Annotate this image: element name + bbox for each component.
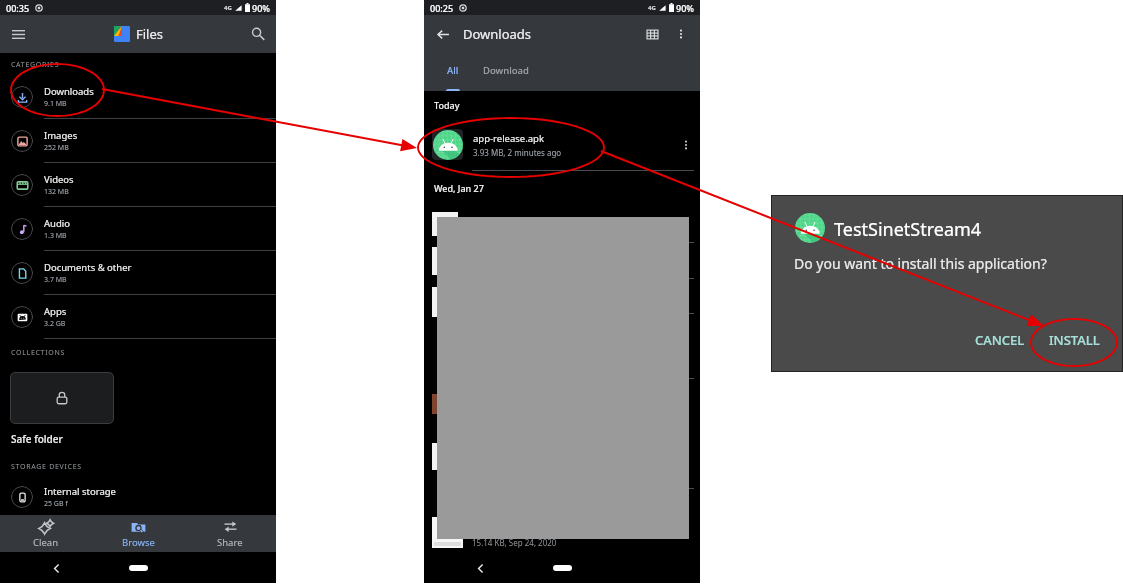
staticText: 25 GB f [44, 499, 68, 509]
button[interactable]: All [434, 53, 472, 91]
button[interactable]: Apps [0, 295, 276, 339]
staticText: TestSinetStream4 [834, 217, 982, 242]
staticText: 00:35 [6, 2, 30, 14]
staticText: Today [434, 99, 460, 111]
staticText: Clean [33, 536, 59, 549]
staticText: Videos [44, 173, 74, 186]
button[interactable]: Images [0, 119, 276, 163]
button[interactable]: Share [184, 515, 276, 552]
button[interactable]: Videos [0, 163, 276, 207]
staticText: STORAGE DEVICES [11, 462, 82, 472]
button[interactable]: INSTALL [1040, 327, 1109, 352]
staticText: Apps [44, 305, 67, 318]
staticText: Share [217, 536, 243, 549]
staticText: Wed, Jan 27 [434, 182, 484, 194]
staticText: app-release.apk [473, 132, 545, 145]
staticText: 252 MB [44, 143, 69, 153]
button[interactable]: Menu [5, 21, 31, 47]
button[interactable]: Browse [92, 515, 184, 552]
staticText: 3.7 MB [44, 275, 67, 285]
staticText: COLLECTIONS [11, 348, 65, 358]
button[interactable]: Back [472, 560, 488, 576]
button[interactable]: app-release.apk [424, 119, 700, 170]
button[interactable]: Clean [0, 515, 92, 552]
staticText: Downloads [463, 25, 532, 43]
staticText: Audio [44, 217, 70, 230]
staticText: 4G [648, 4, 656, 12]
staticText: Browse [122, 536, 155, 549]
button[interactable]: Back [48, 560, 64, 576]
button[interactable] [10, 372, 114, 424]
staticText: Documents & other [44, 261, 132, 274]
staticText: CANCEL [975, 331, 1025, 349]
staticText: 00:25 [430, 2, 454, 14]
staticText: CATEGORIES [11, 60, 60, 70]
staticText: Downloads [44, 85, 94, 98]
button[interactable]: Grid view [639, 21, 665, 47]
button[interactable]: Downloads [0, 75, 276, 119]
staticText: 4G [224, 4, 232, 12]
staticText: 1.3 MB [44, 231, 67, 241]
staticText: 132 MB [44, 187, 69, 197]
button[interactable]: CANCEL [966, 327, 1034, 352]
staticText: 90% [252, 2, 270, 14]
staticText: Images [44, 129, 78, 142]
staticText: All [447, 64, 459, 77]
staticText: 90% [676, 2, 694, 14]
button[interactable]: More options [668, 21, 694, 47]
button[interactable]: Documents & other [0, 251, 276, 295]
staticText: Files [136, 25, 164, 43]
button[interactable]: Back [430, 21, 456, 47]
button[interactable]: Home [129, 565, 148, 571]
staticText: Internal storage [44, 485, 116, 498]
button[interactable]: Search [245, 21, 271, 47]
button[interactable]: Audio [0, 207, 276, 251]
button[interactable]: Internal storage [0, 478, 276, 515]
staticText: Download [483, 64, 529, 77]
button[interactable]: Home [553, 565, 572, 571]
staticText: INSTALL [1049, 331, 1100, 349]
button[interactable]: Download [472, 53, 540, 91]
staticText: Do you want to install this application? [794, 254, 1047, 273]
staticText: 9.1 MB [44, 99, 67, 109]
staticText: 15.14 KB, Sep 24, 2020 [472, 537, 557, 548]
staticText: Safe folder [11, 432, 63, 446]
staticText: 3.2 GB [44, 319, 66, 329]
button[interactable]: More options [672, 131, 700, 159]
staticText: 3.93 MB, 2 minutes ago [473, 147, 562, 158]
